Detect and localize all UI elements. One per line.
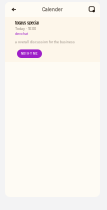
staticText: NOTIFY ME (21, 52, 38, 55)
staticText: Calender (42, 7, 63, 12)
button[interactable]: NOTIFY ME (17, 49, 42, 58)
staticText: Today · 10:00 (15, 26, 36, 31)
staticText: devchat (15, 31, 28, 36)
staticText: a overall discussion for the business (15, 40, 75, 44)
button[interactable]: Photos (87, 4, 97, 15)
button[interactable]: Back (9, 4, 19, 15)
staticText: todays special (15, 20, 39, 25)
